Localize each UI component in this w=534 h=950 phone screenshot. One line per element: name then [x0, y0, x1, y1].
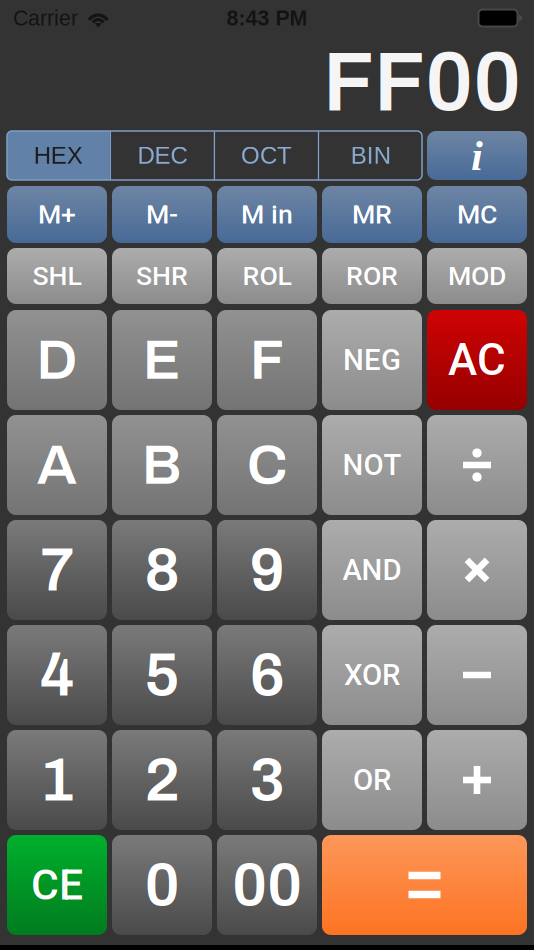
staticText: FF00 — [323, 36, 521, 128]
button[interactable]: OCT — [215, 131, 318, 180]
staticText: i — [471, 132, 483, 179]
staticText: 4 — [39, 642, 74, 708]
staticText: A — [37, 434, 77, 495]
button[interactable]: M- — [112, 186, 212, 243]
button[interactable]: NEG — [322, 310, 422, 410]
staticText: 3 — [249, 747, 284, 813]
staticText: 9 — [249, 537, 284, 603]
button[interactable]: ROR — [322, 248, 422, 304]
staticText: NOT — [342, 448, 401, 482]
button[interactable]: E — [112, 310, 212, 410]
button[interactable]: MR — [322, 186, 422, 243]
staticText: DEC — [137, 142, 187, 169]
staticText: ROL — [242, 260, 291, 292]
staticText: 1 — [39, 747, 74, 813]
staticText: D — [36, 329, 77, 390]
button[interactable]: M in — [217, 186, 317, 243]
button[interactable]: MOD — [427, 248, 527, 304]
staticText: 6 — [249, 642, 284, 708]
button[interactable]: MC — [427, 186, 527, 243]
staticText: OR — [353, 763, 391, 797]
staticText: M+ — [38, 199, 76, 230]
staticText: C — [247, 434, 287, 495]
button[interactable]: B — [112, 415, 212, 515]
button[interactable]: 3 — [217, 730, 317, 830]
button[interactable]: 8 — [112, 520, 212, 620]
button[interactable]: Minus — [427, 625, 527, 725]
staticText: F — [250, 329, 284, 390]
button[interactable]: Plus — [427, 730, 527, 830]
button[interactable]: 1 — [7, 730, 107, 830]
button[interactable]: DEC — [111, 131, 214, 180]
staticText: M- — [146, 199, 178, 230]
staticText: 00 — [232, 852, 302, 918]
staticText: ROR — [346, 260, 398, 292]
staticText: MR — [352, 199, 392, 230]
staticText: MOD — [448, 260, 506, 292]
button[interactable]: SHL — [7, 248, 107, 304]
staticText: HEX — [34, 142, 83, 169]
button[interactable]: 5 — [112, 625, 212, 725]
staticText: M in — [241, 199, 293, 230]
button[interactable]: 4 — [7, 625, 107, 725]
staticText: OCT — [241, 142, 292, 169]
button[interactable]: OR — [322, 730, 422, 830]
staticText: MC — [457, 199, 497, 230]
button[interactable]: C — [217, 415, 317, 515]
button[interactable]: CE — [7, 835, 107, 935]
button[interactable]: 0 — [112, 835, 212, 935]
button[interactable]: A — [7, 415, 107, 515]
staticText: E — [143, 329, 181, 390]
button[interactable]: 7 — [7, 520, 107, 620]
button[interactable]: 9 — [217, 520, 317, 620]
button[interactable]: NOT — [322, 415, 422, 515]
staticText: XOR — [344, 658, 400, 692]
button[interactable]: F — [217, 310, 317, 410]
staticText: 8 — [144, 537, 179, 603]
staticText: 8:43 PM — [226, 6, 307, 30]
staticText: 7 — [39, 537, 74, 603]
button[interactable]: BIN — [319, 131, 422, 180]
staticText: AC — [448, 334, 506, 386]
button[interactable]: AC — [427, 310, 527, 410]
staticText: 5 — [144, 642, 179, 708]
button[interactable]: Info — [427, 131, 527, 180]
button[interactable]: 6 — [217, 625, 317, 725]
staticText: NEG — [343, 343, 401, 377]
staticText: CE — [31, 860, 83, 910]
staticText: SHR — [136, 260, 188, 292]
button[interactable]: 2 — [112, 730, 212, 830]
button[interactable]: D — [7, 310, 107, 410]
button[interactable]: M+ — [7, 186, 107, 243]
button[interactable]: HEX — [7, 131, 110, 180]
button[interactable]: ROL — [217, 248, 317, 304]
staticText: 0 — [144, 852, 179, 918]
staticText: B — [142, 434, 182, 495]
button[interactable]: SHR — [112, 248, 212, 304]
staticText: SHL — [32, 260, 81, 292]
button[interactable]: Divide — [427, 415, 527, 515]
button[interactable]: 00 — [217, 835, 317, 935]
staticText: BIN — [351, 142, 391, 169]
staticText: Carrier — [13, 6, 78, 30]
staticText: AND — [342, 553, 401, 587]
button[interactable]: XOR — [322, 625, 422, 725]
button[interactable]: AND — [322, 520, 422, 620]
button[interactable]: Multiply — [427, 520, 527, 620]
button[interactable]: Equals — [322, 835, 527, 935]
staticText: 2 — [144, 747, 179, 813]
